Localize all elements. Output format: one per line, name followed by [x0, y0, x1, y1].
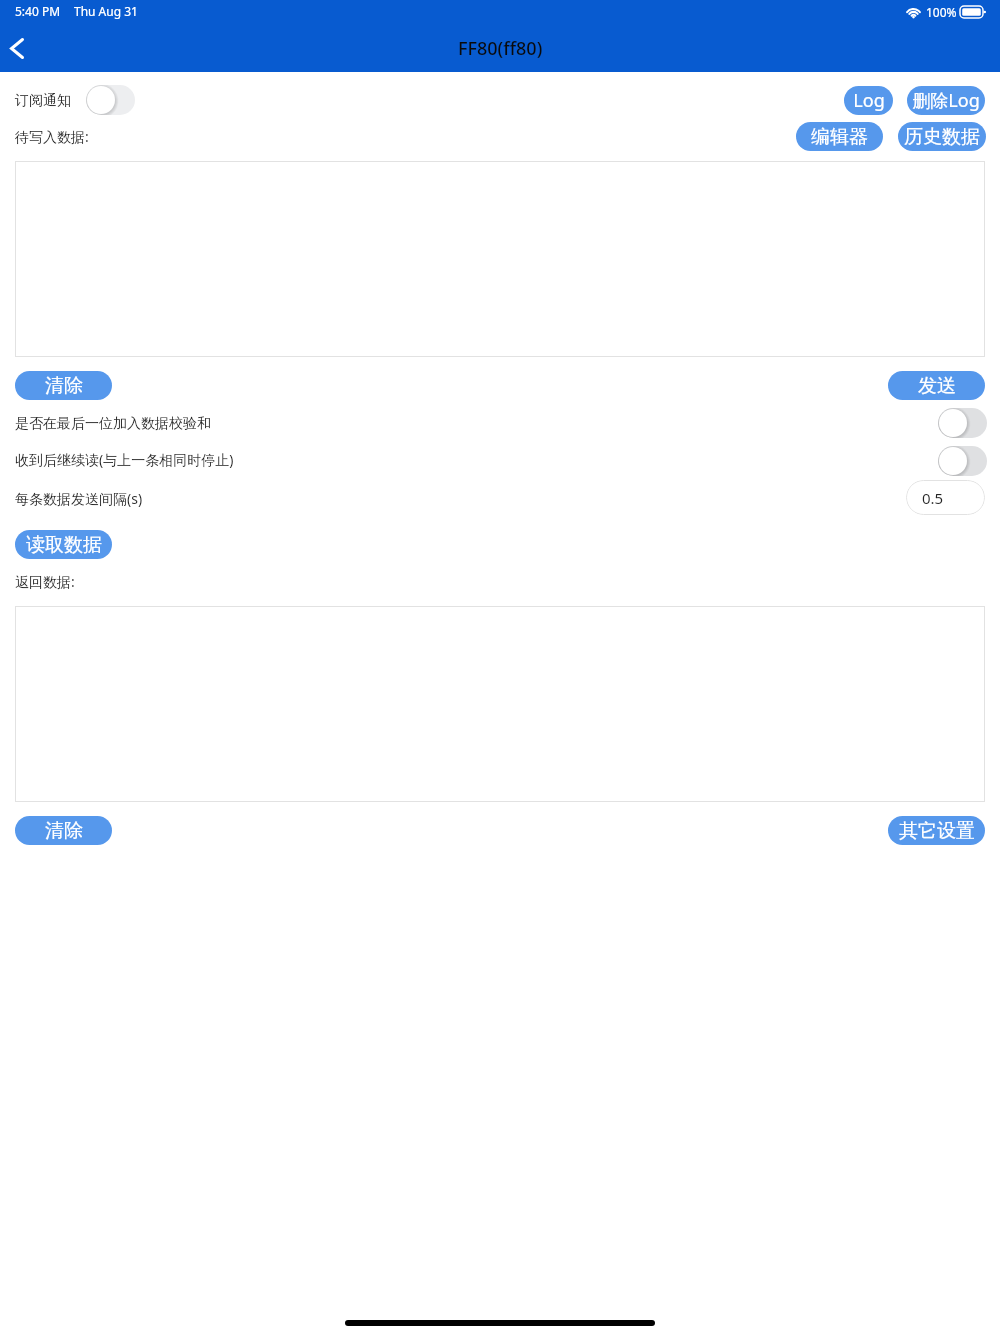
- button[interactable]: 清除: [15, 816, 112, 845]
- button[interactable]: 其它设置: [888, 816, 985, 845]
- staticText: 发送: [918, 374, 956, 398]
- button[interactable]: Log: [844, 86, 893, 115]
- button[interactable]: 发送: [888, 371, 985, 400]
- staticText: 删除Log: [912, 88, 980, 113]
- button[interactable]: 0.5: [906, 480, 985, 515]
- staticText: 是否在最后一位加入数据校验和: [15, 415, 211, 433]
- button[interactable]: Returned data output: [15, 606, 985, 802]
- staticText: 清除: [45, 374, 83, 398]
- button[interactable]: 读取数据: [15, 530, 112, 559]
- staticText: 返回数据:: [15, 572, 75, 591]
- staticText: 编辑器: [811, 125, 868, 149]
- staticText: 读取数据: [26, 533, 102, 557]
- staticText: 其它设置: [899, 819, 975, 843]
- button[interactable]: Keep reading: [938, 446, 987, 476]
- button[interactable]: 历史数据: [898, 122, 986, 151]
- button[interactable]: Data to write input: [15, 161, 985, 357]
- staticText: FF80(ff80): [458, 36, 543, 61]
- staticText: 5:40 PM: [15, 3, 61, 19]
- staticText: 订阅通知: [15, 92, 71, 110]
- staticText: 待写入数据:: [15, 127, 89, 146]
- staticText: 收到后继续读(与上一条相同时停止): [15, 450, 234, 469]
- staticText: 每条数据发送间隔(s): [15, 489, 143, 508]
- button[interactable]: 编辑器: [796, 122, 883, 151]
- button[interactable]: 删除Log: [907, 86, 985, 115]
- button[interactable]: Back: [0, 26, 39, 70]
- button[interactable]: Subscribe to notifications: [86, 85, 135, 115]
- staticText: 清除: [45, 819, 83, 843]
- staticText: 0.5: [922, 488, 944, 508]
- button[interactable]: 清除: [15, 371, 112, 400]
- staticText: 历史数据: [904, 125, 980, 149]
- staticText: Thu Aug 31: [74, 3, 138, 19]
- staticText: Log: [853, 88, 885, 113]
- staticText: 100%: [926, 4, 957, 20]
- button[interactable]: Append checksum: [938, 408, 987, 438]
